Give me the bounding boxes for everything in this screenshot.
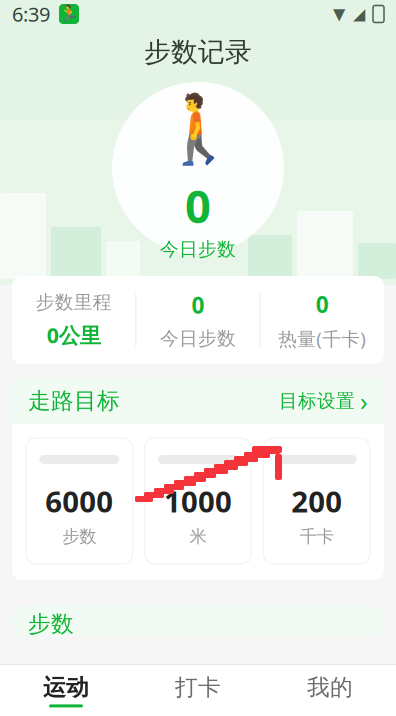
staticText: ◢ xyxy=(353,5,365,23)
staticText: 🏃 xyxy=(59,5,79,23)
staticText: 今日步数 xyxy=(160,327,236,350)
button[interactable]: 走路目标 xyxy=(12,378,384,424)
staticText: 0 xyxy=(191,290,204,320)
staticText: 0公里 xyxy=(47,321,101,349)
staticText: 米 xyxy=(189,526,206,547)
staticText: 0 xyxy=(185,175,211,236)
staticText: 目标设置 xyxy=(279,389,355,412)
staticText: 步数记录 xyxy=(144,36,252,68)
staticText: 6000 xyxy=(45,482,113,521)
staticText: 6:39 xyxy=(12,1,50,27)
staticText: 步数里程 xyxy=(36,291,112,314)
button[interactable]: 6000 xyxy=(26,438,133,564)
button[interactable]: 打卡 xyxy=(132,665,264,716)
staticText: 1000 xyxy=(164,482,232,521)
staticText: ▼ xyxy=(333,5,345,23)
staticText: 打卡 xyxy=(175,674,221,701)
staticText: 🚶 xyxy=(156,91,239,167)
staticText: › xyxy=(360,384,368,418)
staticText: 200 xyxy=(291,482,342,521)
staticText: 运动 xyxy=(43,674,89,701)
staticText: 我的 xyxy=(307,674,353,701)
button[interactable]: 运动 xyxy=(0,665,132,716)
staticText: 走路目标 xyxy=(28,387,120,415)
staticText: 千卡 xyxy=(300,526,334,547)
button[interactable]: 1000 xyxy=(145,438,251,564)
staticText: 步数 xyxy=(62,526,96,547)
staticText: 步数 xyxy=(28,610,74,638)
button[interactable]: 200 xyxy=(263,438,370,564)
staticText: 0 xyxy=(316,289,329,319)
staticText: 今日步数 xyxy=(160,238,236,261)
button[interactable]: 我的 xyxy=(264,665,396,716)
staticText: 热量(千卡) xyxy=(278,326,366,351)
